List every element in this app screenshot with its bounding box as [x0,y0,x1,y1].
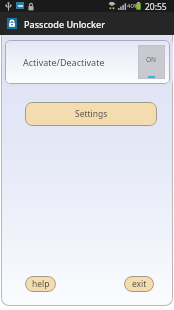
staticText: Passcode Unlocker [24,18,106,30]
button[interactable]: Settings [25,102,157,126]
button[interactable]: exit [124,276,154,292]
staticText: exit [132,278,147,290]
button[interactable]: help [25,276,56,292]
staticText: help [32,278,50,290]
staticText: ON [146,55,157,64]
staticText: 40% [127,2,139,10]
staticText: Activate/Deactivate [23,56,105,68]
button[interactable]: Toggle activation [138,45,165,79]
staticText: 20:55 [145,1,167,13]
staticText: Settings [75,108,108,120]
